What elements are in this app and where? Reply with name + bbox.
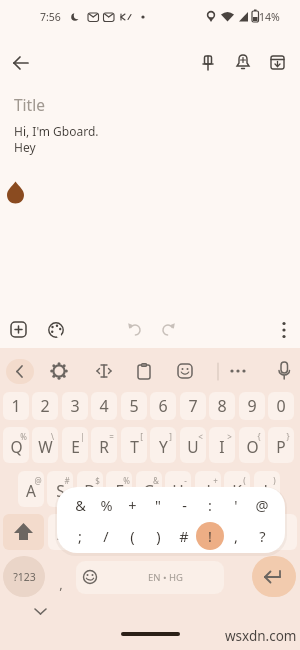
button[interactable] (67, 490, 93, 521)
button[interactable] (165, 471, 191, 507)
staticText: W (38, 436, 53, 457)
button[interactable] (93, 490, 119, 521)
button[interactable] (91, 427, 117, 463)
staticText: ' (234, 495, 238, 515)
staticText: @ (34, 475, 42, 486)
staticText: = (109, 431, 114, 442)
button[interactable] (62, 427, 88, 463)
staticText: & (153, 475, 159, 486)
staticText: I (219, 436, 225, 457)
staticText: wsxdn.com (225, 627, 297, 645)
button[interactable] (180, 392, 206, 420)
staticText: B (174, 523, 185, 544)
staticText: % (123, 475, 130, 486)
button[interactable] (171, 490, 197, 521)
staticText: Q (10, 436, 23, 457)
button[interactable] (77, 514, 103, 550)
button[interactable] (136, 471, 162, 507)
button[interactable] (171, 357, 199, 385)
button[interactable] (119, 490, 145, 521)
button[interactable] (270, 357, 298, 385)
button[interactable] (90, 357, 118, 385)
button[interactable] (225, 514, 251, 550)
button[interactable] (239, 392, 265, 420)
button[interactable] (195, 471, 221, 507)
button[interactable] (145, 521, 171, 552)
button[interactable] (252, 556, 296, 597)
staticText: $ (95, 475, 100, 486)
button[interactable] (3, 427, 29, 463)
button[interactable] (106, 471, 132, 507)
button[interactable] (254, 471, 280, 507)
staticText: ? (259, 526, 266, 546)
button[interactable] (18, 471, 44, 507)
button[interactable] (268, 427, 294, 463)
button[interactable] (222, 357, 250, 385)
button[interactable] (223, 490, 249, 521)
button[interactable] (270, 316, 298, 344)
button[interactable] (45, 357, 73, 385)
staticText: - (184, 475, 187, 486)
button[interactable] (197, 521, 223, 552)
button[interactable] (171, 521, 197, 552)
button[interactable] (78, 561, 104, 594)
button[interactable] (8, 49, 36, 77)
button[interactable] (3, 392, 29, 420)
button[interactable] (47, 471, 73, 507)
staticText: \ (51, 431, 54, 442)
button[interactable] (223, 521, 249, 552)
button[interactable] (121, 392, 147, 420)
button[interactable] (91, 392, 117, 420)
button[interactable] (150, 392, 176, 420)
button[interactable] (229, 49, 257, 77)
button[interactable] (195, 514, 221, 550)
button[interactable] (224, 471, 250, 507)
button[interactable] (77, 471, 103, 507)
button[interactable] (93, 521, 119, 552)
button[interactable] (166, 514, 192, 550)
button[interactable] (249, 521, 275, 552)
button[interactable] (28, 600, 54, 622)
button[interactable] (130, 357, 158, 385)
button[interactable] (121, 427, 147, 463)
button[interactable] (263, 49, 291, 77)
button[interactable] (197, 490, 223, 521)
button[interactable] (136, 514, 162, 550)
button[interactable] (145, 490, 171, 521)
staticText: D (84, 480, 96, 501)
button[interactable] (47, 558, 73, 596)
button[interactable] (3, 514, 44, 550)
staticText: % (20, 431, 27, 442)
button[interactable] (239, 427, 265, 463)
button[interactable] (194, 49, 222, 77)
button[interactable] (4, 316, 32, 344)
button[interactable] (255, 514, 297, 550)
button[interactable] (3, 556, 45, 597)
button[interactable] (121, 316, 149, 344)
button[interactable] (32, 392, 58, 420)
button[interactable] (76, 561, 224, 594)
button[interactable] (48, 514, 74, 550)
staticText: ] (169, 431, 172, 442)
staticText: - (182, 495, 187, 515)
staticText: Hey (14, 139, 36, 155)
button[interactable] (107, 514, 133, 550)
button[interactable] (154, 316, 182, 344)
button[interactable] (32, 427, 58, 463)
staticText: : (208, 495, 212, 515)
button[interactable] (67, 521, 93, 552)
button[interactable] (180, 427, 206, 463)
button[interactable] (62, 392, 88, 420)
button[interactable] (209, 427, 235, 463)
button[interactable] (209, 392, 235, 420)
staticText: G (143, 480, 155, 501)
button[interactable] (150, 427, 176, 463)
button[interactable] (119, 521, 145, 552)
staticText: 4 (99, 395, 109, 417)
button[interactable] (249, 490, 275, 521)
staticText: J (206, 480, 211, 501)
button[interactable] (268, 392, 294, 420)
button[interactable] (42, 316, 70, 344)
button[interactable] (6, 358, 34, 385)
